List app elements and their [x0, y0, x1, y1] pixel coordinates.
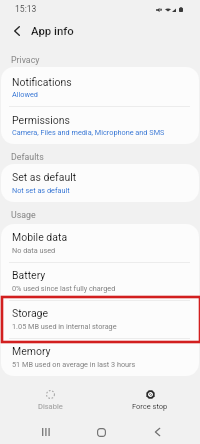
- button[interactable]: Set as default: [1, 164, 199, 202]
- staticText: Permissions: [12, 114, 71, 126]
- staticText: Set as default: [12, 171, 77, 183]
- staticText: No data used: [12, 246, 56, 255]
- button[interactable]: Storage: [1, 300, 199, 338]
- staticText: Usage: [11, 210, 36, 220]
- staticText: App info: [31, 24, 74, 37]
- staticText: 0% used since last fully charged: [12, 284, 116, 293]
- button[interactable]: Notifications: [1, 69, 199, 107]
- staticText: Storage: [12, 307, 49, 319]
- button[interactable]: Disable: [0, 384, 100, 416]
- button[interactable]: Memory: [1, 338, 199, 376]
- staticText: Camera, Files and media, Microphone and …: [12, 128, 165, 137]
- button[interactable]: Back: [147, 422, 167, 442]
- button[interactable]: Permissions: [1, 107, 199, 144]
- staticText: Allowed: [12, 90, 38, 99]
- staticText: 15:13: [15, 4, 37, 14]
- staticText: Notifications: [12, 76, 72, 88]
- staticText: 1.05 MB used in internal storage: [12, 322, 117, 331]
- button[interactable]: Recents: [36, 422, 56, 442]
- staticText: Force stop: [132, 402, 168, 411]
- staticText: 51 MB used on average in last 3 hours: [12, 360, 136, 369]
- button[interactable]: Home: [91, 422, 111, 442]
- staticText: Mobile data: [12, 231, 68, 243]
- button[interactable]: Force stop: [100, 384, 200, 416]
- staticText: Memory: [12, 345, 51, 357]
- staticText: Defaults: [11, 152, 44, 162]
- button[interactable]: Battery: [1, 262, 199, 300]
- staticText: Privacy: [11, 55, 40, 65]
- staticText: Disable: [38, 402, 63, 411]
- button[interactable]: Mobile data: [1, 224, 199, 262]
- button[interactable]: Navigate up: [1, 20, 32, 42]
- staticText: Not set as default: [12, 186, 70, 195]
- staticText: Battery: [12, 269, 46, 281]
